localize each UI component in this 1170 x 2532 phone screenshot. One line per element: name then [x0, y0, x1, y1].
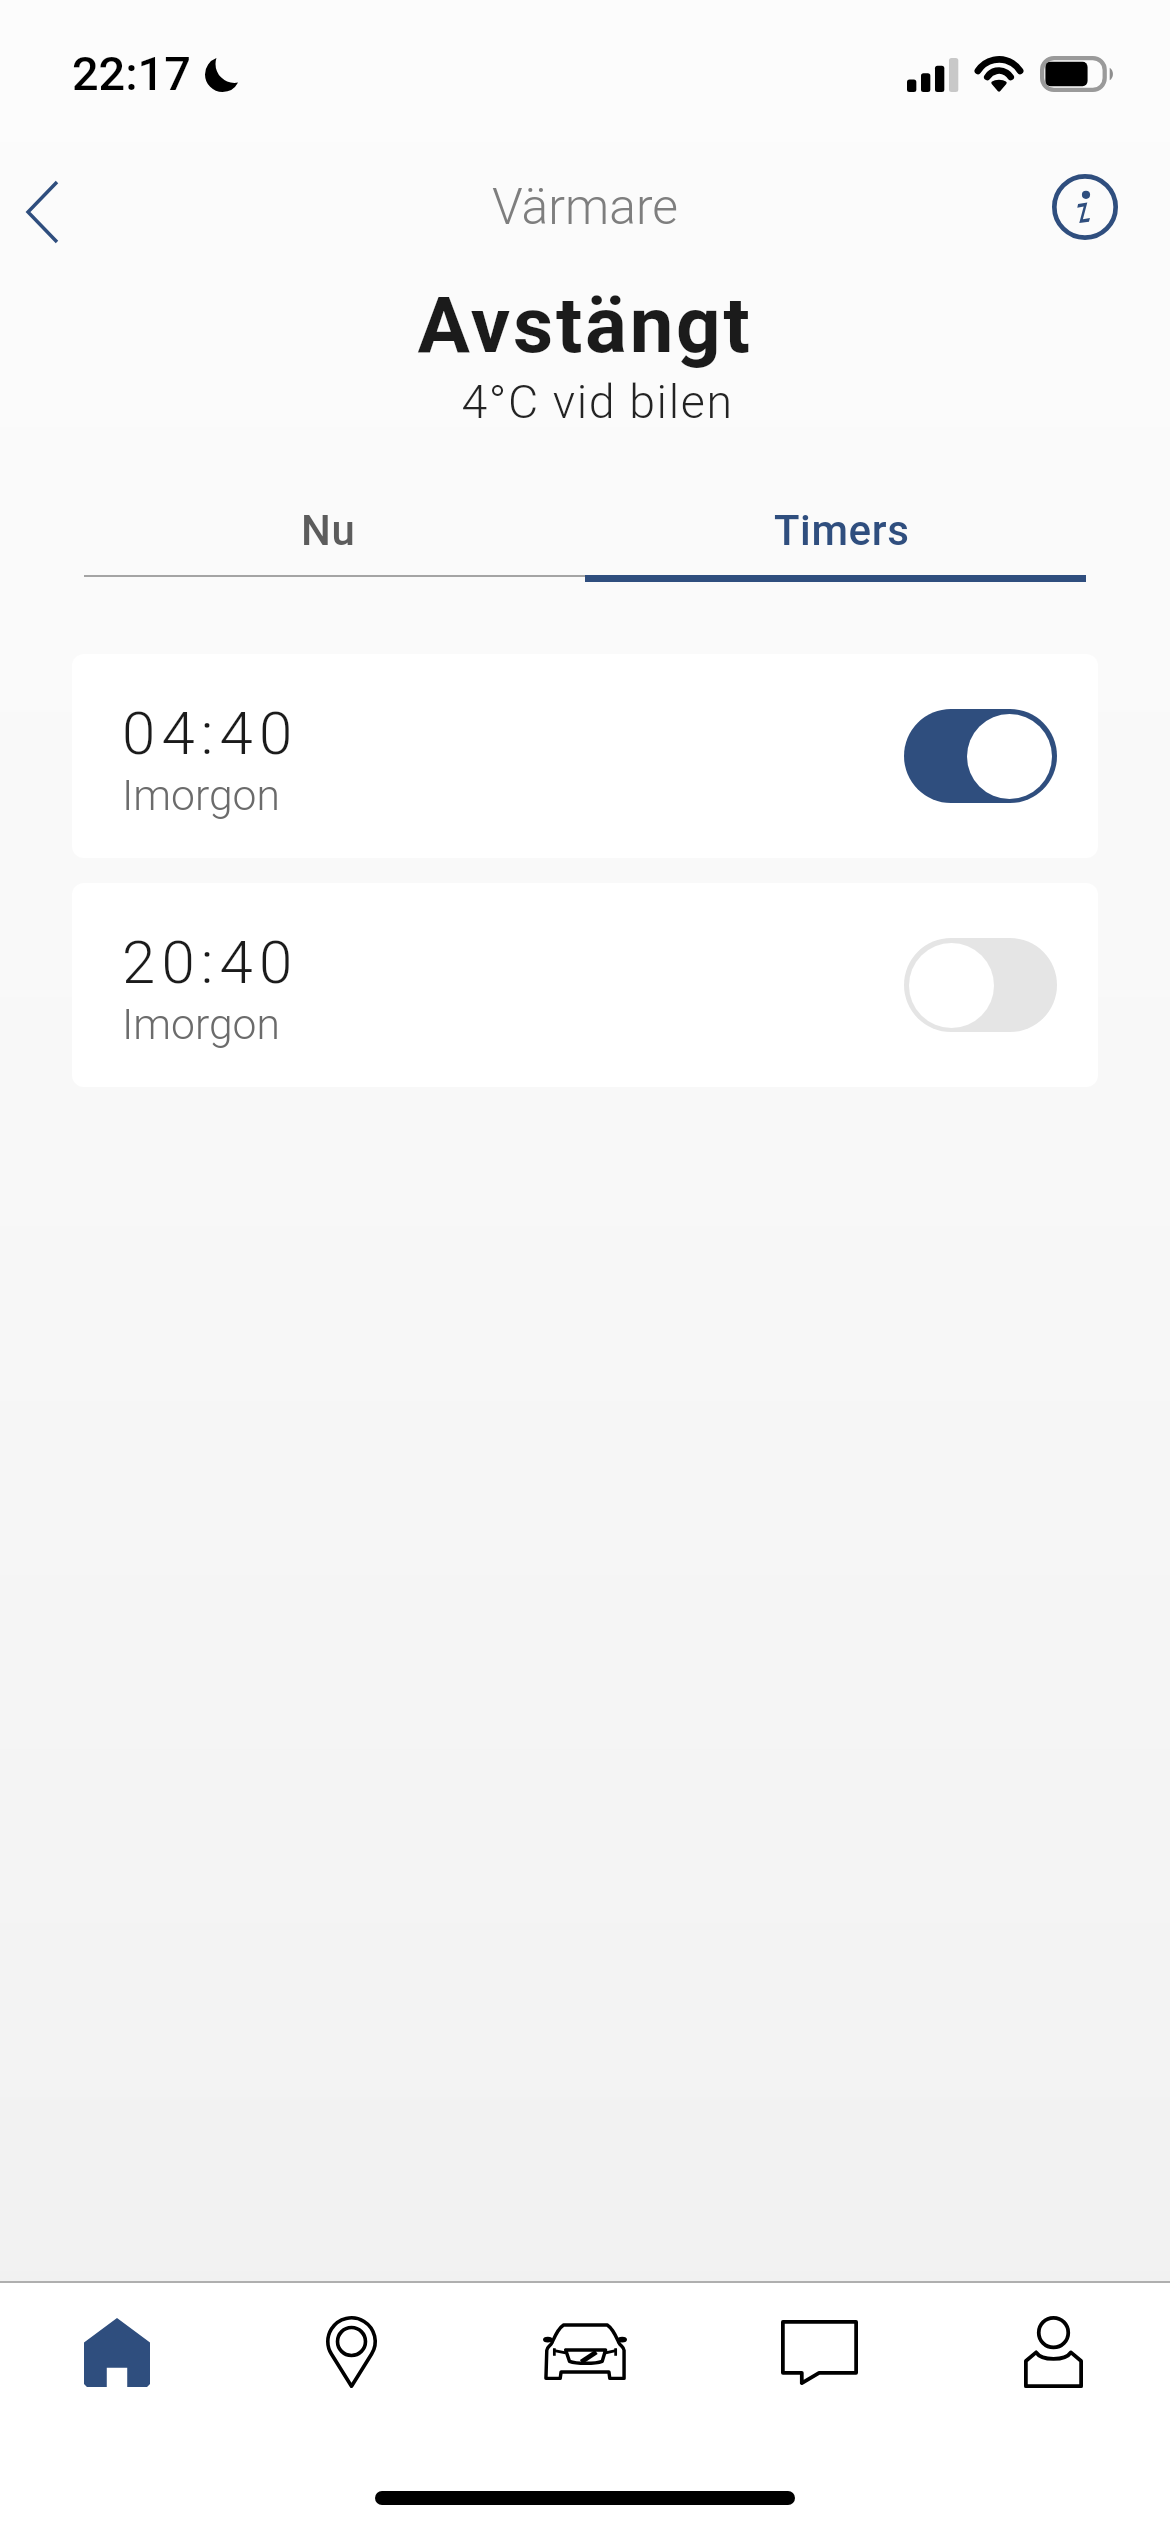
staticText: 20:40: [122, 927, 299, 997]
staticText: Timers: [774, 506, 910, 555]
button[interactable]: Profile: [936, 2283, 1170, 2421]
button[interactable]: Information: [1034, 156, 1136, 258]
staticText: 4°C vid bilen: [461, 375, 734, 429]
button[interactable]: Home: [0, 2283, 234, 2421]
button[interactable]: 20:40: [72, 883, 1098, 1087]
staticText: 04:40: [122, 698, 299, 768]
button[interactable]: 04:40: [72, 654, 1098, 858]
button[interactable]: Back: [0, 153, 114, 261]
button[interactable]: Nu: [72, 485, 585, 575]
staticText: Avstängt: [417, 280, 753, 371]
staticText: 22:17: [72, 47, 191, 102]
button[interactable]: Messages: [702, 2283, 936, 2421]
staticText: Värmare: [492, 178, 679, 236]
staticText: Imorgon: [122, 770, 280, 820]
button[interactable]: Timer on: [904, 709, 1057, 803]
button[interactable]: Timers: [585, 485, 1098, 575]
button[interactable]: Car: [468, 2283, 702, 2421]
staticText: Imorgon: [122, 999, 280, 1049]
button[interactable]: Map: [234, 2283, 468, 2421]
staticText: Nu: [301, 506, 356, 555]
button[interactable]: Timer off: [904, 938, 1057, 1032]
